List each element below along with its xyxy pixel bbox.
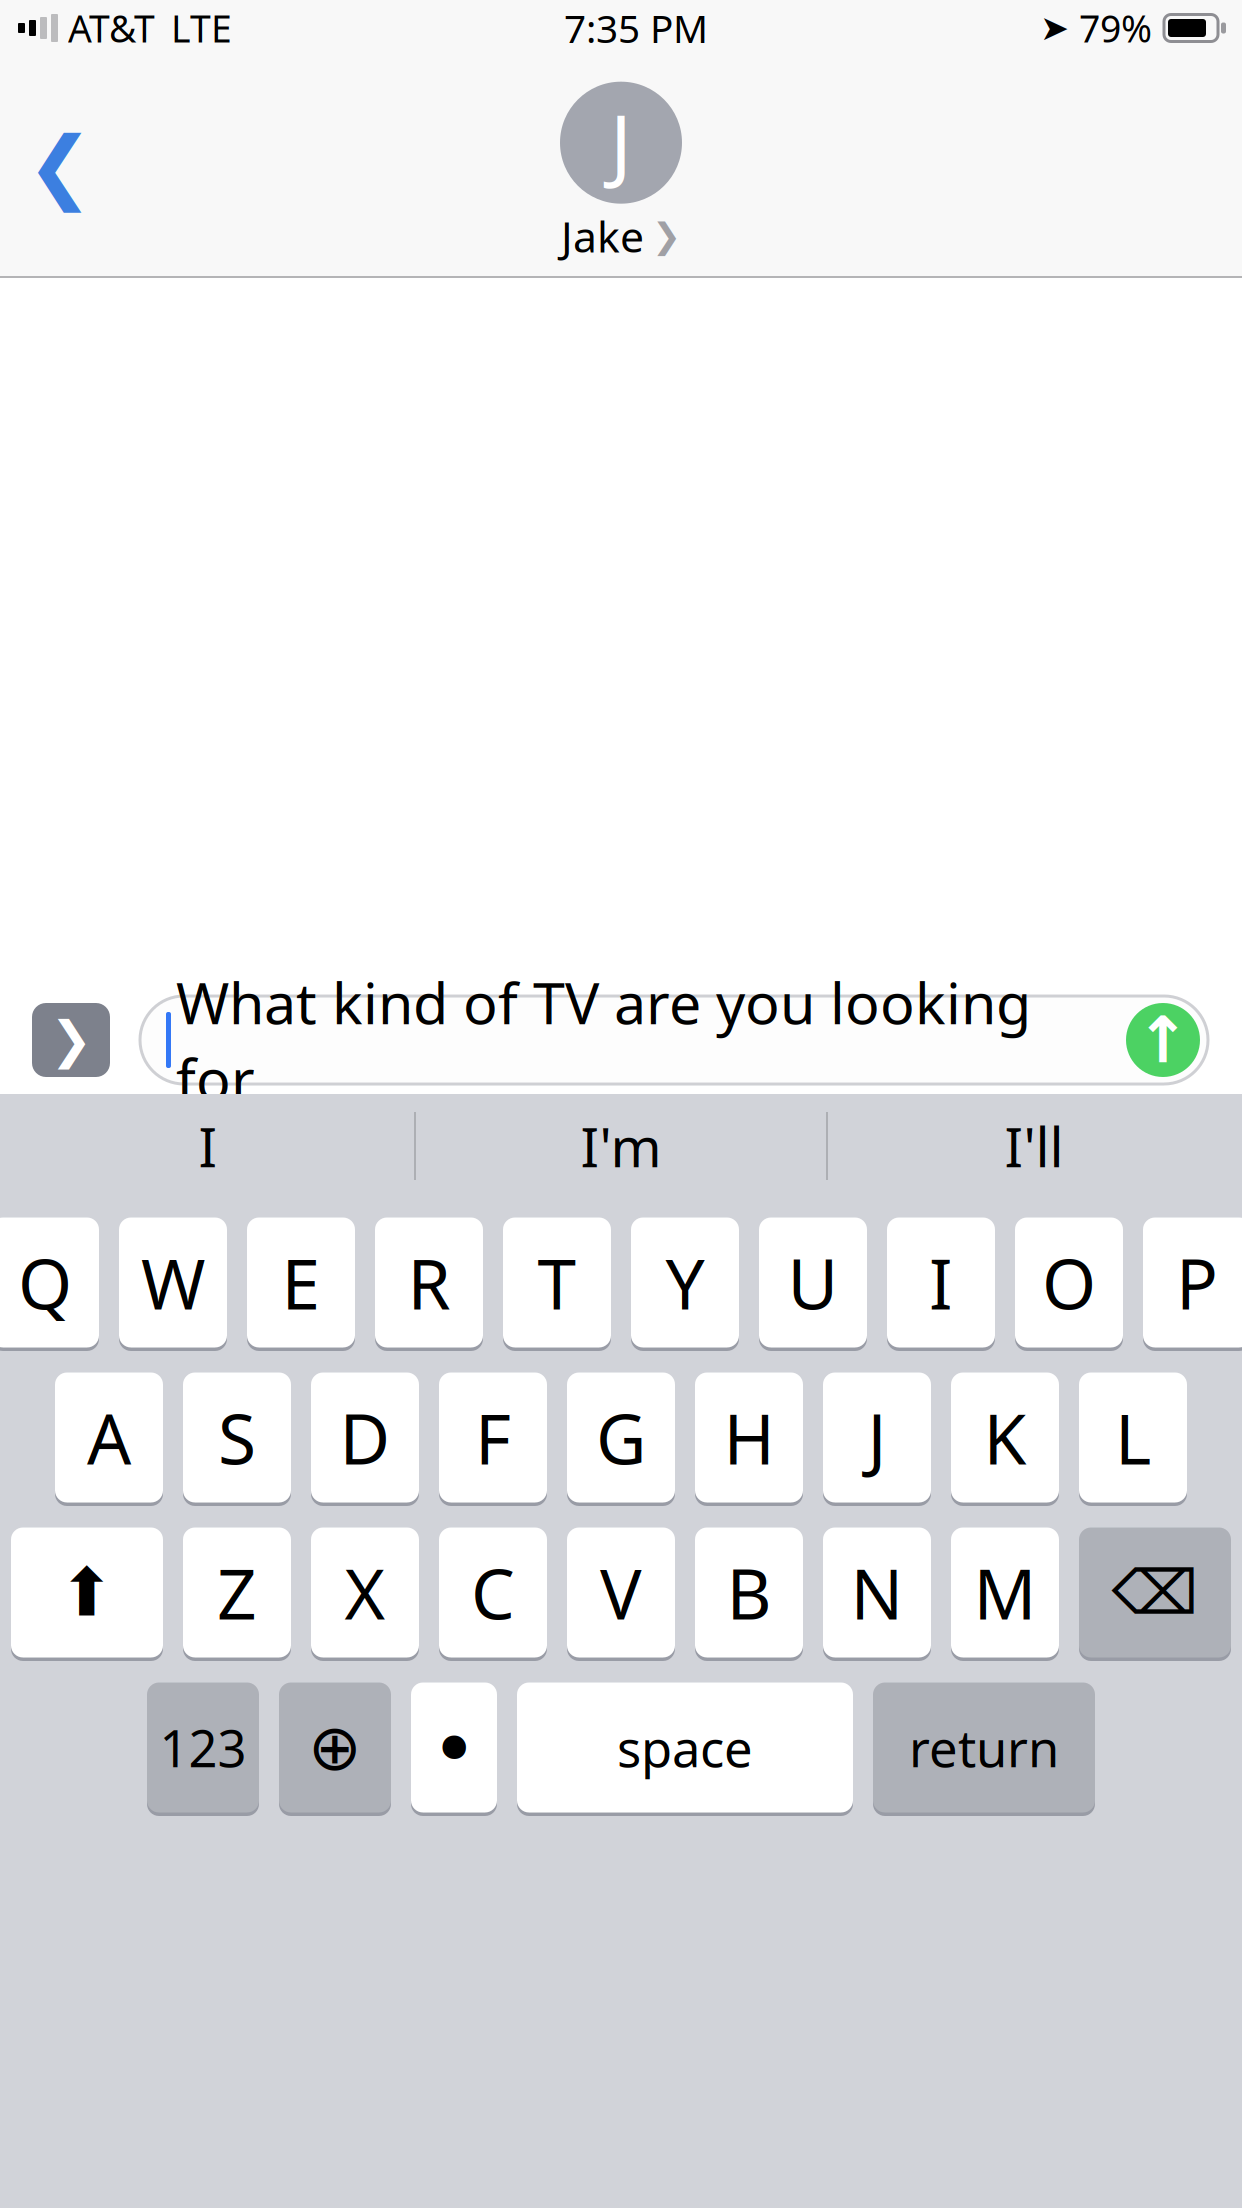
button[interactable]: G (567, 1369, 675, 1506)
staticText: I (198, 1110, 217, 1182)
staticText: O (1042, 1236, 1096, 1329)
staticText: 123 (159, 1714, 246, 1781)
staticText: I'll (1004, 1110, 1063, 1182)
button[interactable]: R (375, 1214, 483, 1351)
button[interactable]: ⏺ (411, 1679, 497, 1816)
button[interactable]: L (1079, 1369, 1187, 1506)
button[interactable]: N (823, 1524, 931, 1661)
button[interactable]: S (183, 1369, 291, 1506)
button[interactable]: P (1143, 1214, 1242, 1351)
button[interactable]: X (311, 1524, 419, 1661)
button[interactable]: ⊕ (279, 1679, 391, 1816)
staticText: 79% (1079, 3, 1152, 53)
button[interactable]: K (951, 1369, 1059, 1506)
button[interactable]: E (247, 1214, 355, 1351)
staticText: X (344, 1546, 385, 1639)
staticText: K (983, 1391, 1026, 1484)
staticText: space (617, 1714, 753, 1781)
staticText: LTE (171, 3, 232, 53)
button[interactable]: Send (1126, 1003, 1200, 1077)
staticText: M (973, 1546, 1036, 1639)
staticText: ❯ (50, 1011, 92, 1069)
staticText: ➤ (1040, 8, 1069, 48)
staticText: T (537, 1236, 576, 1329)
staticText: What kind of TV are you looking for (176, 964, 1031, 1116)
button[interactable]: return (873, 1679, 1095, 1816)
staticText: V (600, 1546, 642, 1639)
button[interactable]: I'm (416, 1094, 826, 1198)
staticText: F (475, 1391, 511, 1484)
staticText: ❮ (26, 121, 93, 211)
staticText: Jake (561, 208, 644, 264)
staticText: P (1176, 1236, 1218, 1329)
staticText: D (339, 1391, 390, 1484)
staticText: C (471, 1546, 515, 1639)
button[interactable]: Y (631, 1214, 739, 1351)
staticText: Z (217, 1546, 257, 1639)
button[interactable]: I'll (828, 1094, 1240, 1198)
button[interactable]: J (560, 68, 682, 264)
button[interactable]: App drawer (32, 1003, 110, 1077)
button[interactable]: V (567, 1524, 675, 1661)
staticText: J (867, 1391, 886, 1484)
staticText: ⬆ (59, 1555, 115, 1630)
staticText: W (141, 1236, 205, 1329)
staticText: ⊕ (308, 1711, 362, 1784)
button[interactable]: I (2, 1094, 414, 1198)
button[interactable]: D (311, 1369, 419, 1506)
button[interactable]: A (55, 1369, 163, 1506)
staticText: Q (18, 1236, 72, 1329)
staticText: G (596, 1391, 646, 1484)
button[interactable]: O (1015, 1214, 1123, 1351)
staticText: Y (665, 1236, 704, 1329)
staticText: U (787, 1236, 838, 1329)
staticText: N (850, 1546, 903, 1639)
button[interactable]: ⬆ (11, 1524, 163, 1661)
staticText: H (723, 1391, 774, 1484)
staticText: AT&T (68, 3, 155, 53)
staticText: 7:35 PM (564, 2, 708, 54)
staticText: ⌫ (1111, 1558, 1198, 1627)
button[interactable]: H (695, 1369, 803, 1506)
button[interactable]: 123 (147, 1679, 259, 1816)
staticText: S (218, 1391, 256, 1484)
staticText: R (407, 1236, 450, 1329)
staticText: L (1115, 1391, 1151, 1484)
button[interactable]: Back (0, 106, 120, 226)
button[interactable]: F (439, 1369, 547, 1506)
button[interactable]: M (951, 1524, 1059, 1661)
staticText: return (909, 1714, 1059, 1781)
button[interactable]: C (439, 1524, 547, 1661)
staticText: A (87, 1391, 131, 1484)
staticText: E (281, 1236, 320, 1329)
staticText: ❯ (652, 216, 681, 256)
staticText: B (726, 1546, 771, 1639)
button[interactable]: J (823, 1369, 931, 1506)
button[interactable]: Z (183, 1524, 291, 1661)
staticText: I'm (580, 1110, 661, 1182)
button[interactable]: U (759, 1214, 867, 1351)
button[interactable]: space (517, 1679, 853, 1816)
staticText: I (929, 1236, 953, 1329)
button[interactable]: I (887, 1214, 995, 1351)
button[interactable]: ⌫ (1079, 1524, 1231, 1661)
staticText: ↑ (1136, 1004, 1190, 1076)
button[interactable]: W (119, 1214, 227, 1351)
button[interactable]: T (503, 1214, 611, 1351)
button[interactable]: Q (0, 1214, 99, 1351)
button[interactable]: B (695, 1524, 803, 1661)
staticText: J (610, 90, 632, 196)
staticText: ⏺ (441, 1723, 466, 1772)
